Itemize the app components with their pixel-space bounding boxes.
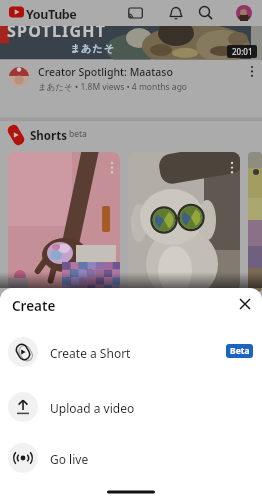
staticText: まあたそ • 1.8M views • 4 months ago (38, 81, 187, 93)
staticText: YouTube (26, 6, 77, 23)
staticText: Go live (50, 451, 89, 467)
staticText: Upload a video (50, 400, 135, 416)
staticText: 20:01 (232, 46, 253, 57)
staticText: まあたそ (70, 42, 115, 55)
staticText: beta (69, 128, 87, 140)
staticText: Shorts (30, 128, 67, 144)
staticText: Beta (230, 345, 250, 357)
staticText: SPOTLIGHT (7, 26, 107, 42)
staticText: Create a Short (50, 345, 131, 361)
staticText: Creator Spotlight: Maataso (38, 65, 173, 79)
staticText: Create (12, 297, 56, 315)
